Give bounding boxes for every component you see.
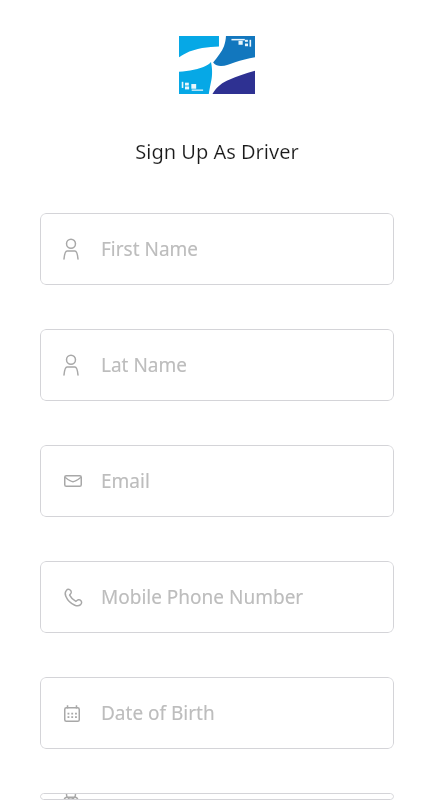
staticText: Lat Name [101,352,187,378]
button[interactable]: First Name [40,213,394,285]
staticText: Date of Birth [101,700,215,726]
button[interactable]: Date of Birth [40,677,394,749]
staticText: Mobile Phone Number [101,584,304,610]
staticText: Email [101,468,150,494]
button[interactable] [40,793,394,800]
staticText: Sign Up As Driver [135,138,299,165]
button[interactable]: Email [40,445,394,517]
button[interactable]: Mobile Phone Number [40,561,394,633]
button[interactable]: Lat Name [40,329,394,401]
staticText: First Name [101,236,199,262]
